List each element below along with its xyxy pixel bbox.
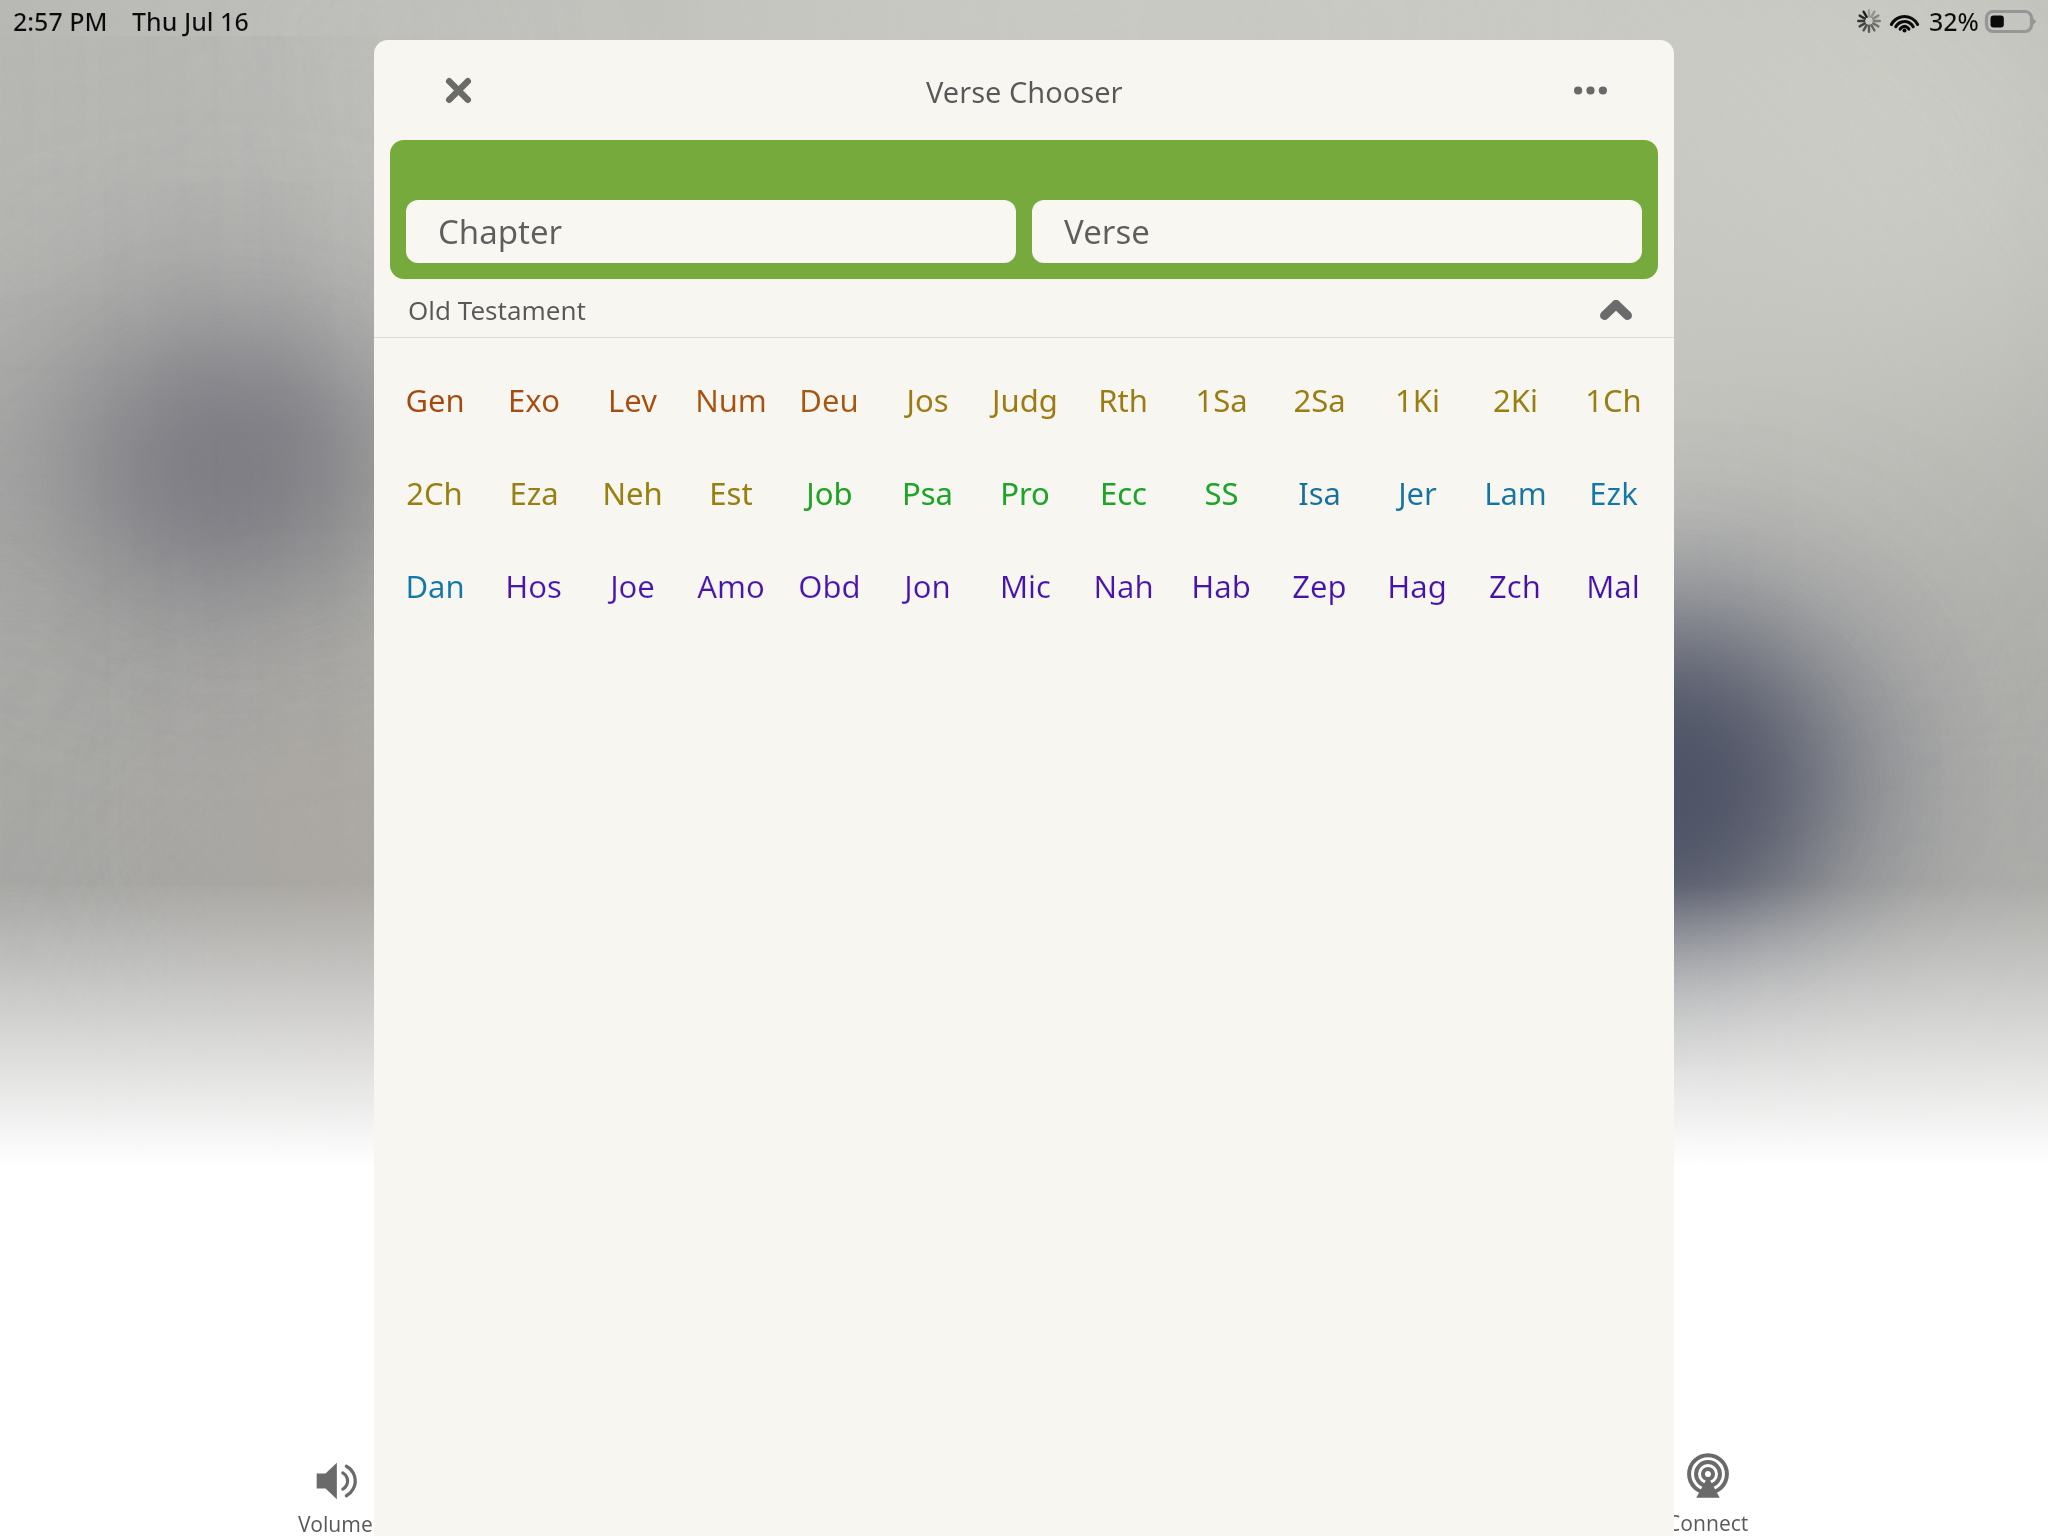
button[interactable]: Lev [583, 377, 682, 423]
staticText: Dan [405, 565, 465, 607]
staticText: 32% [1929, 4, 1979, 38]
button[interactable]: 2Sa [1270, 377, 1368, 423]
staticText: SS [1204, 472, 1239, 514]
button[interactable]: Lam [1466, 470, 1564, 516]
button[interactable]: Ecc [1074, 470, 1172, 516]
staticText: 2Sa [1293, 379, 1346, 421]
button[interactable]: Joe [583, 563, 682, 609]
button[interactable]: Psa [878, 470, 976, 516]
staticText: Thu Jul 16 [132, 4, 249, 38]
staticText: Jos [906, 379, 949, 421]
button[interactable]: Volume [298, 1462, 373, 1536]
staticText: Verse Chooser [926, 72, 1123, 111]
staticText: Zep [1292, 565, 1347, 607]
staticText: Verse [1064, 209, 1150, 254]
staticText: Volume [298, 1510, 373, 1536]
button[interactable]: SS [1172, 470, 1270, 516]
staticText: Jon [904, 565, 951, 607]
staticText: Mic [1000, 565, 1051, 607]
staticText: Lev [608, 379, 657, 421]
staticText: Isa [1298, 472, 1341, 514]
staticText: Exo [508, 379, 560, 421]
staticText: 1Ch [1585, 379, 1642, 421]
button[interactable]: Mal [1564, 563, 1662, 609]
staticText: Chapter [438, 209, 563, 254]
button[interactable]: 2Ch [385, 470, 484, 516]
button[interactable]: Isa [1270, 470, 1368, 516]
button[interactable]: 1Sa [1172, 377, 1270, 423]
button[interactable]: Deu [780, 377, 878, 423]
staticText: Job [806, 472, 853, 514]
button[interactable]: Exo [484, 377, 583, 423]
button[interactable]: Job [780, 470, 878, 516]
staticText: Old Testament [408, 292, 586, 327]
staticText: Rth [1098, 379, 1148, 421]
button[interactable]: Zep [1270, 563, 1368, 609]
button[interactable]: Obd [780, 563, 878, 609]
staticText: Deu [799, 379, 859, 421]
staticText: Hab [1191, 565, 1251, 607]
staticText: Ecc [1100, 472, 1147, 514]
staticText: Judg [992, 379, 1058, 421]
staticText: Ezk [1589, 472, 1638, 514]
button[interactable]: Zch [1466, 563, 1564, 609]
staticText: 2Ch [406, 472, 463, 514]
button[interactable]: Chapter [406, 200, 1016, 263]
staticText: Connect [1667, 1509, 1749, 1536]
button[interactable]: More options [1562, 62, 1618, 118]
button[interactable]: Est [682, 470, 780, 516]
staticText: Zch [1489, 565, 1541, 607]
button[interactable]: Close [430, 62, 486, 118]
staticText: Pro [1000, 472, 1050, 514]
staticText: Gen [405, 379, 465, 421]
button[interactable]: Hos [484, 563, 583, 609]
button[interactable]: Old Testament [374, 279, 1674, 337]
button[interactable]: Amo [682, 563, 780, 609]
button[interactable]: Mic [976, 563, 1074, 609]
button[interactable]: Dan [385, 563, 484, 609]
staticText: Amo [697, 565, 765, 607]
staticText: Psa [902, 472, 953, 514]
staticText: 1Sa [1195, 379, 1248, 421]
staticText: Eza [509, 472, 559, 514]
button[interactable]: Pro [976, 470, 1074, 516]
button[interactable]: 2Ki [1466, 377, 1564, 423]
button[interactable]: Verse [1032, 200, 1642, 263]
button[interactable]: Num [682, 377, 780, 423]
button[interactable]: Gen [385, 377, 484, 423]
staticText: Lam [1484, 472, 1547, 514]
button[interactable]: Rth [1074, 377, 1172, 423]
button[interactable]: Connect [1667, 1456, 1749, 1536]
staticText: 2:57 PM [13, 4, 108, 38]
staticText: Hag [1387, 565, 1447, 607]
button[interactable]: Nah [1074, 563, 1172, 609]
staticText: Jer [1398, 472, 1437, 514]
button[interactable]: Hag [1368, 563, 1466, 609]
button[interactable]: 1Ch [1564, 377, 1662, 423]
staticText: Nah [1093, 565, 1154, 607]
staticText: Joe [610, 565, 655, 607]
button[interactable]: Jos [878, 377, 976, 423]
staticText: Obd [798, 565, 861, 607]
button[interactable]: Jon [878, 563, 976, 609]
button[interactable]: Neh [583, 470, 682, 516]
staticText: 1Ki [1395, 379, 1440, 421]
button[interactable]: Jer [1368, 470, 1466, 516]
staticText: Hos [505, 565, 562, 607]
button[interactable]: 1Ki [1368, 377, 1466, 423]
button[interactable]: Ezk [1564, 470, 1662, 516]
staticText: 2Ki [1493, 379, 1538, 421]
staticText: Mal [1586, 565, 1640, 607]
staticText: Neh [602, 472, 663, 514]
button[interactable]: Eza [484, 470, 583, 516]
staticText: Est [709, 472, 753, 514]
button[interactable]: Judg [976, 377, 1074, 423]
button[interactable]: Hab [1172, 563, 1270, 609]
staticText: Num [695, 379, 767, 421]
